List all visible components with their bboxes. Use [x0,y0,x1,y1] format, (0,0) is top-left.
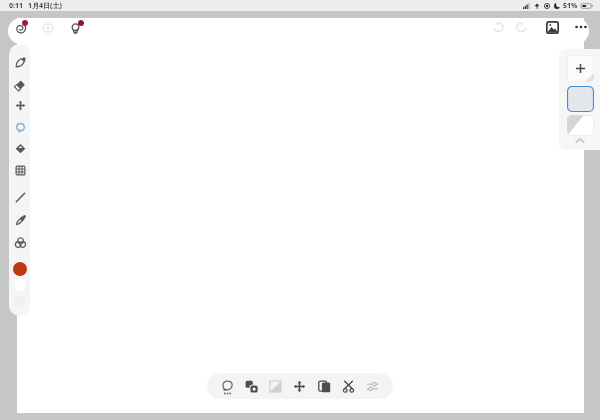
button[interactable]: Fill [10,138,30,158]
button[interactable]: Adjust [362,376,382,396]
button[interactable]: Undo [487,16,509,38]
button[interactable]: Move [10,95,30,115]
button[interactable]: Transform [289,376,309,396]
button[interactable]: Eyedropper [10,210,30,230]
button[interactable]: Layer options [241,376,261,396]
button[interactable]: Tips [64,17,86,39]
button[interactable]: Primary colour [13,262,27,276]
button[interactable]: Secondary colour [14,279,26,291]
button[interactable]: Brush [10,52,30,72]
button[interactable]: Grid [10,160,30,180]
button[interactable]: Gallery [541,16,563,38]
button[interactable]: Transparent colour [14,296,25,307]
button[interactable]: Colour mixer [10,232,30,252]
button[interactable]: Brush settings [9,17,31,39]
button[interactable]: Line [10,187,30,207]
button[interactable]: Layer 2 selected [567,86,594,112]
button[interactable]: Symmetry [37,17,59,39]
button[interactable]: Eraser [10,74,30,94]
button[interactable]: Gradient [265,376,285,396]
button[interactable]: More options [571,17,591,37]
staticText: 51% [563,1,578,11]
button[interactable]: Redo [510,16,532,38]
button[interactable]: Collapse layers [573,136,587,145]
button[interactable]: Layer 1 [567,115,594,136]
button[interactable]: Lasso select [10,117,30,137]
button[interactable]: Duplicate [314,376,334,396]
button[interactable]: Selection [217,376,237,396]
staticText: 1月4日(土) [28,1,62,11]
button[interactable]: Cut [338,376,358,396]
staticText: 0:11 [9,1,23,11]
button[interactable]: Add layer [567,55,594,82]
